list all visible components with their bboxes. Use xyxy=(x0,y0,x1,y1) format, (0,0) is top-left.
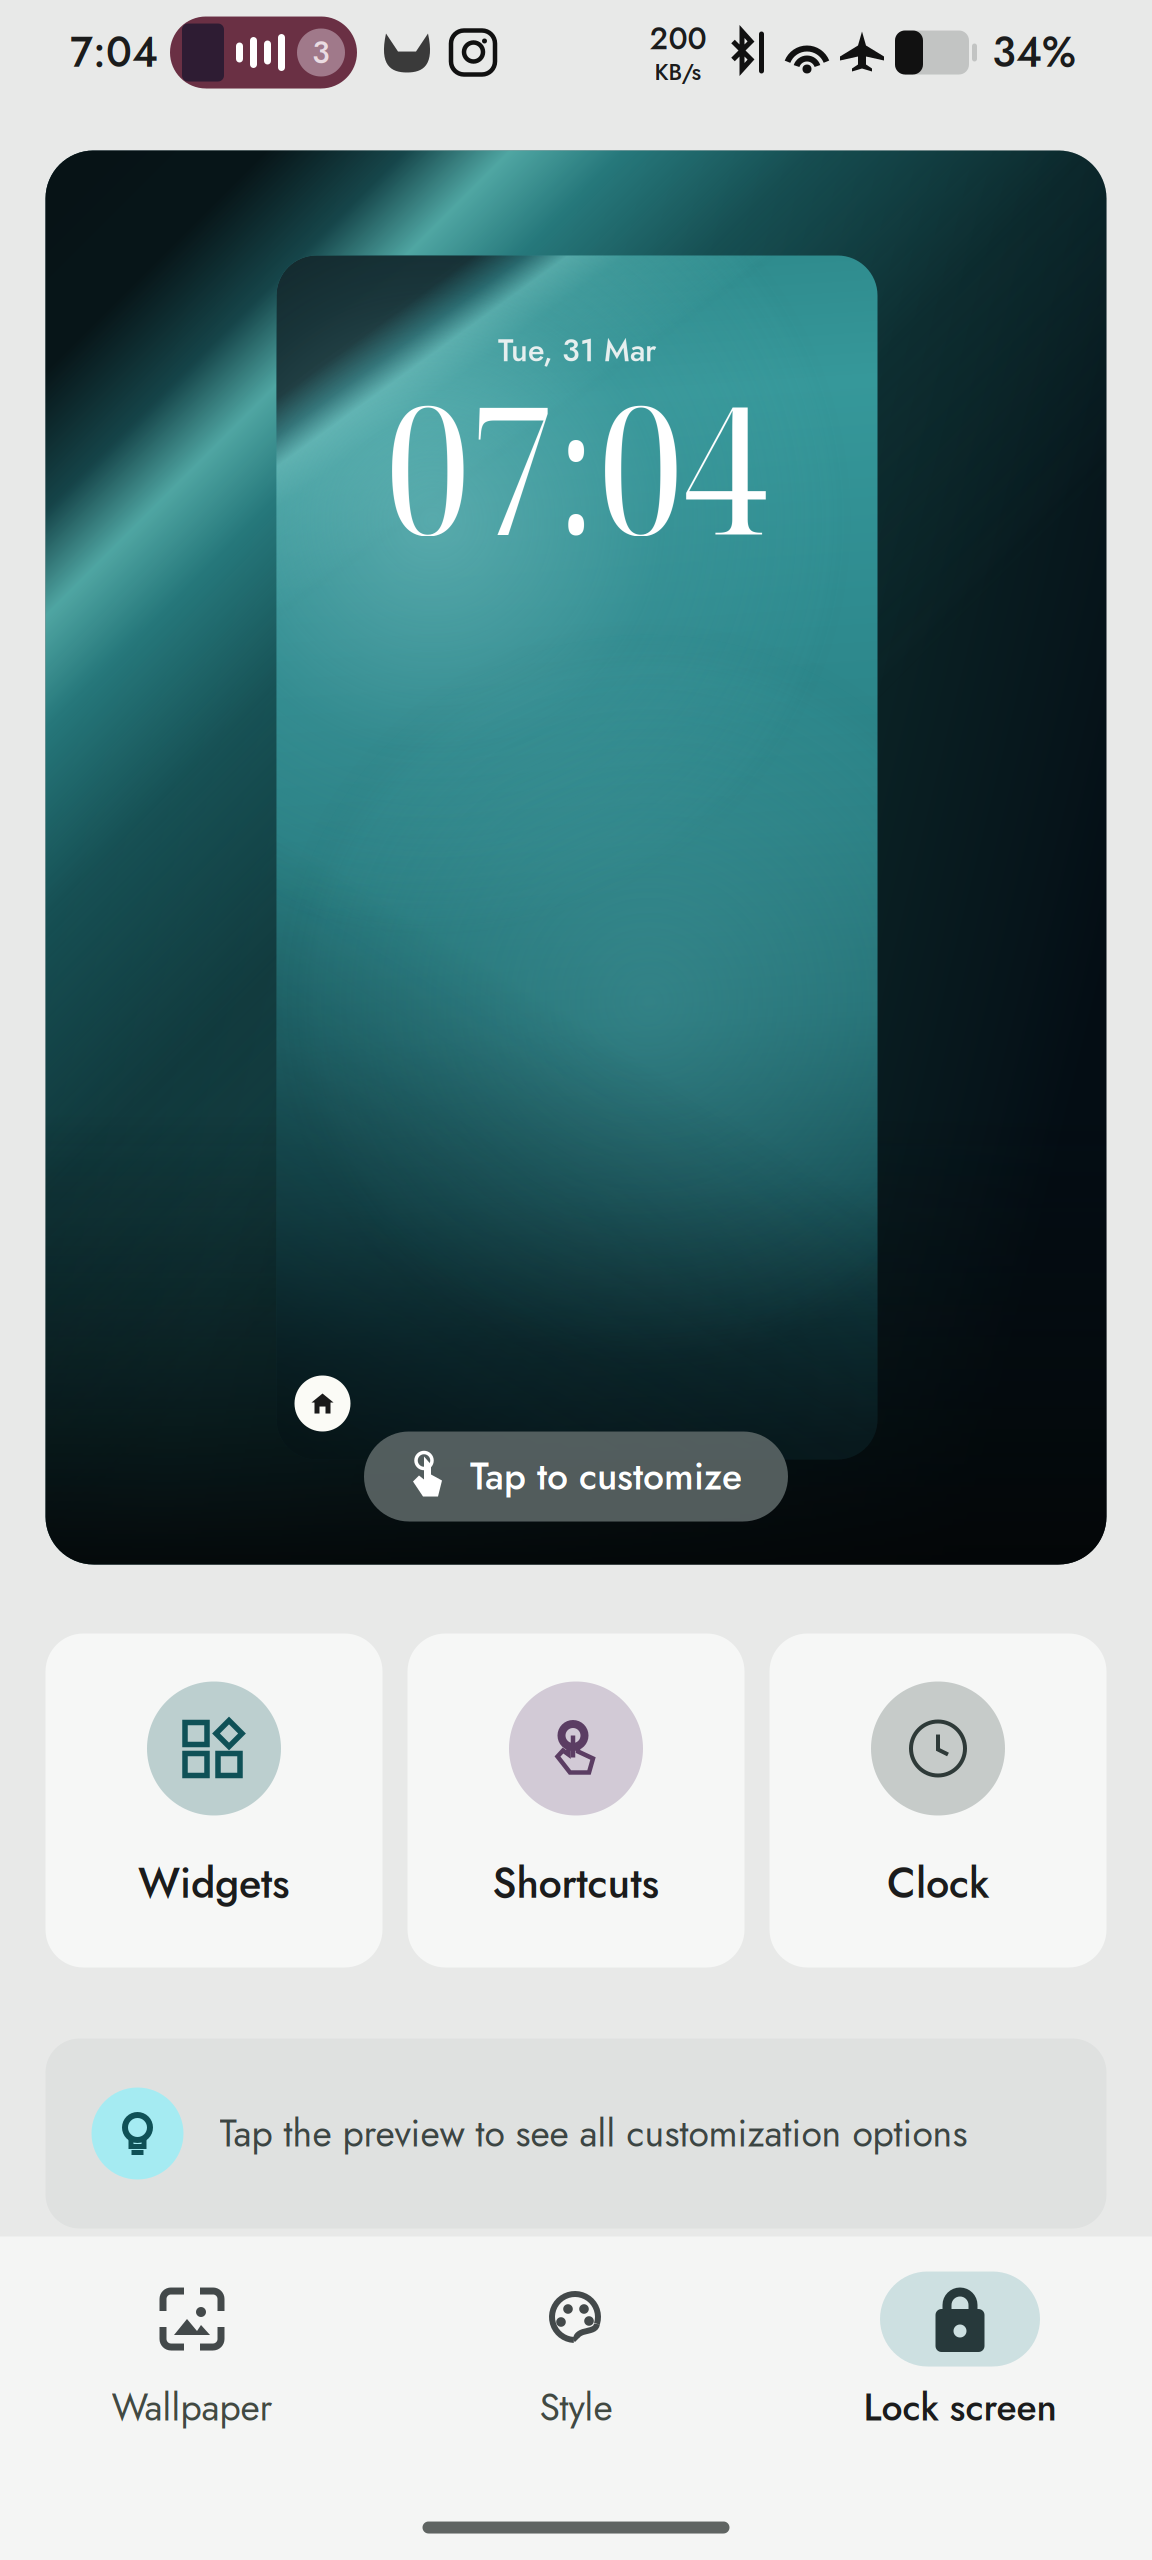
button[interactable]: Clock xyxy=(769,1633,1106,1967)
staticText: Shortcuts xyxy=(492,1853,659,1913)
button[interactable]: Shortcuts xyxy=(407,1633,744,1967)
button[interactable]: Lock screen xyxy=(768,2271,1152,2434)
staticText: Wallpaper xyxy=(111,2380,272,2434)
staticText: 200 xyxy=(649,16,706,61)
button[interactable]: Widgets xyxy=(45,1633,382,1967)
button[interactable]: Style xyxy=(384,2271,768,2434)
staticText: Style xyxy=(539,2380,612,2434)
staticText: Lock screen xyxy=(863,2380,1056,2434)
staticText: Tap the preview to see all customization… xyxy=(219,2106,967,2160)
staticText: 07:04 xyxy=(385,345,768,586)
staticText: Tap to customize xyxy=(470,1449,742,1503)
staticText: 7:04 xyxy=(70,23,158,82)
staticText: KB/s xyxy=(654,56,701,89)
button[interactable]: Wallpaper xyxy=(0,2271,384,2434)
button[interactable]: Tue, 31 Mar xyxy=(45,150,1106,1564)
staticText: Tue, 31 Mar xyxy=(498,328,656,373)
staticText: Clock xyxy=(887,1853,989,1913)
staticText: 34% xyxy=(992,23,1076,82)
staticText: Widgets xyxy=(138,1853,290,1913)
staticText: 3 xyxy=(312,30,330,75)
